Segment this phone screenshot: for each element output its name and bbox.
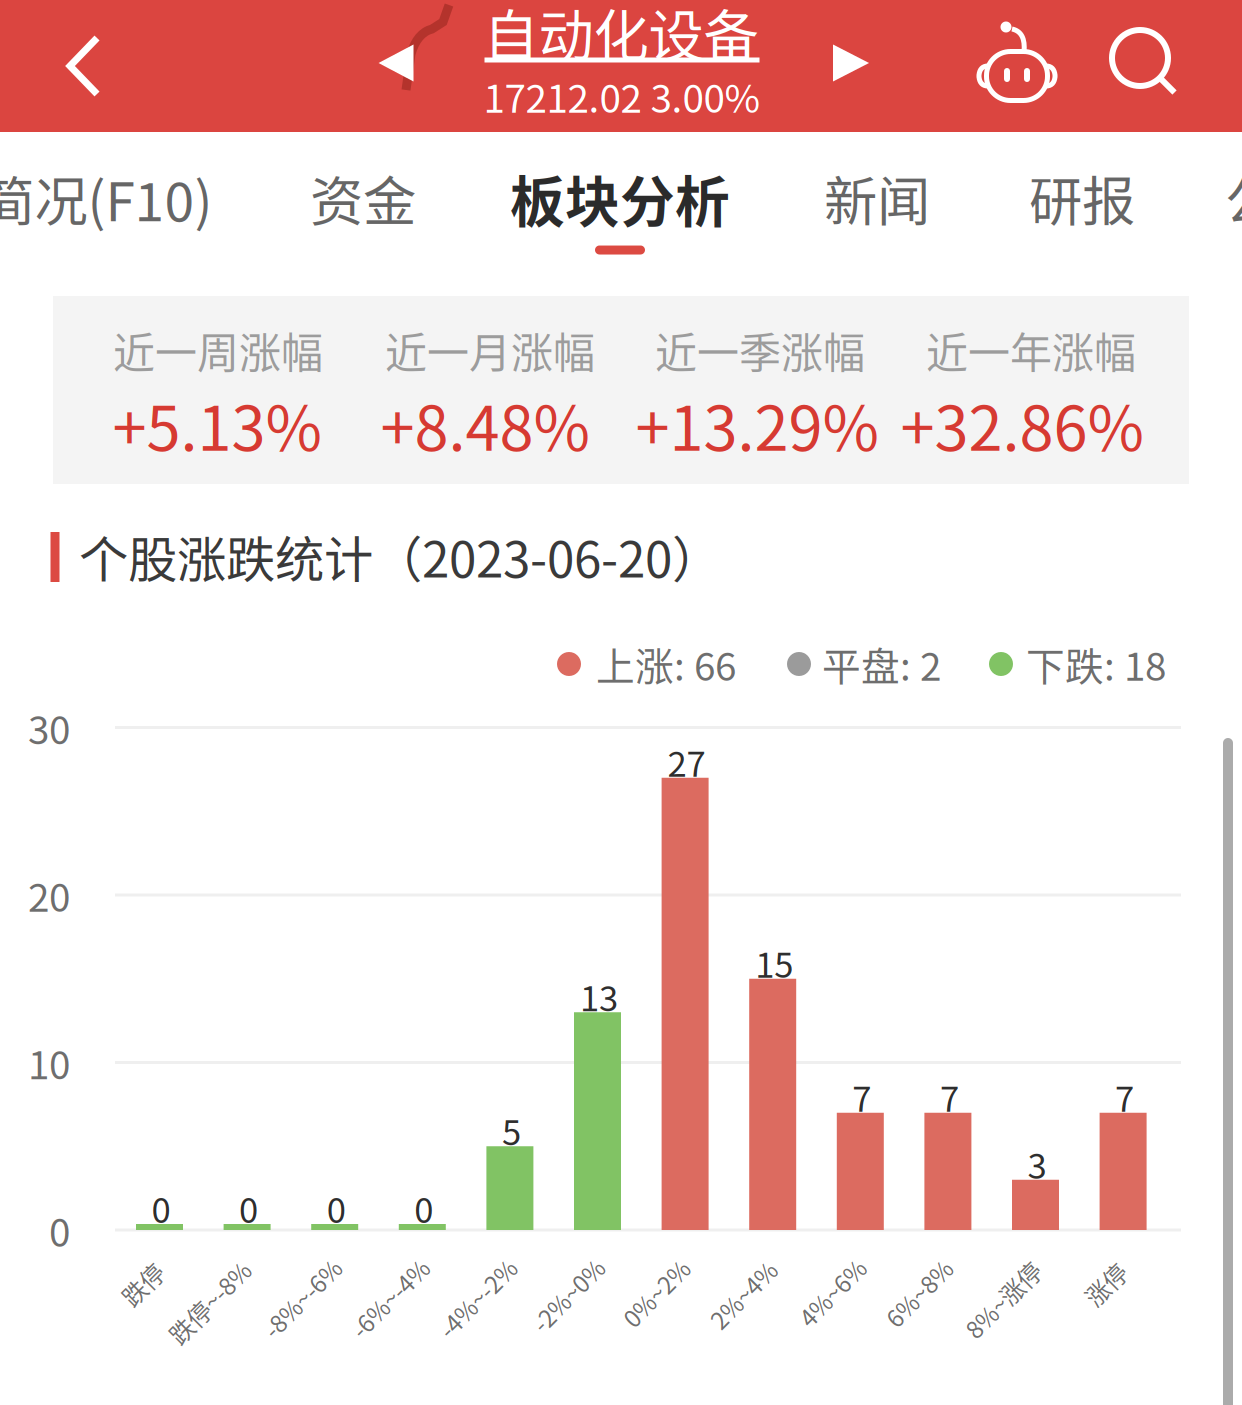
staticText: 10: [28, 1034, 70, 1090]
button[interactable]: 新闻: [752, 124, 1002, 272]
staticText: -6%~-4%: [340, 1281, 439, 1315]
staticText: 公告: [1225, 159, 1242, 237]
button[interactable]: 简况(F10): [0, 124, 222, 272]
staticText: 个股涨跌统计（2023-06-20）: [79, 520, 721, 592]
staticText: -4%~-2%: [428, 1281, 527, 1315]
staticText: 简况(F10): [0, 159, 212, 237]
staticText: 7: [852, 1072, 871, 1122]
staticText: 近一季涨幅: [655, 320, 865, 380]
button[interactable]: Previous sector: [348, 3, 444, 123]
staticText: +13.29%: [635, 380, 878, 468]
staticText: +8.48%: [380, 380, 589, 468]
button[interactable]: Search: [1082, 0, 1206, 129]
staticText: 3: [1027, 1139, 1046, 1189]
staticText: 资金: [310, 159, 416, 237]
staticText: -8%~-6%: [253, 1281, 352, 1315]
button[interactable]: 资金: [238, 124, 488, 272]
staticText: +32.86%: [900, 380, 1143, 468]
button[interactable]: 公告: [1153, 124, 1242, 272]
staticText: 板块分析: [510, 158, 730, 238]
staticText: 0: [414, 1183, 433, 1233]
staticText: 研报: [1029, 159, 1135, 237]
staticText: 17212.02 3.00%: [483, 68, 760, 124]
staticText: 0%~2%: [615, 1276, 698, 1310]
staticText: -2%~0%: [522, 1278, 613, 1312]
staticText: 30: [28, 699, 70, 755]
staticText: 下跌: 18: [1026, 636, 1166, 692]
button[interactable]: Next sector: [803, 3, 899, 123]
button[interactable]: 研报: [957, 124, 1207, 272]
staticText: 15: [755, 938, 793, 988]
staticText: 0: [239, 1183, 258, 1233]
staticText: 跌停: [118, 1267, 166, 1301]
staticText: +5.13%: [112, 380, 321, 468]
staticText: 8%~涨停: [955, 1282, 1051, 1317]
button[interactable]: Back: [21, 0, 145, 132]
staticText: 13: [580, 971, 618, 1021]
staticText: 近一周涨幅: [113, 320, 323, 380]
staticText: 上涨: 66: [596, 636, 736, 692]
staticText: 0: [49, 1202, 70, 1258]
staticText: 近一年涨幅: [926, 320, 1136, 380]
staticText: 涨停: [1082, 1267, 1130, 1301]
button[interactable]: AI assistant: [955, 4, 1079, 136]
staticText: 5: [502, 1105, 521, 1155]
staticText: 0: [327, 1183, 346, 1233]
staticText: 自动化设备: [483, 0, 758, 72]
staticText: 7: [1115, 1072, 1134, 1122]
staticText: 近一月涨幅: [385, 320, 595, 380]
staticText: 7: [940, 1072, 959, 1122]
staticText: 27: [668, 737, 706, 787]
staticText: 新闻: [824, 159, 930, 237]
staticText: 20: [28, 867, 70, 923]
staticText: 0: [151, 1183, 170, 1233]
staticText: 2%~4%: [702, 1277, 785, 1312]
staticText: 4%~6%: [791, 1275, 874, 1310]
staticText: 平盘: 2: [822, 636, 941, 692]
staticText: 跌停~-8%: [158, 1285, 262, 1319]
staticText: 6%~8%: [877, 1276, 960, 1310]
button[interactable]: 板块分析: [505, 124, 735, 272]
